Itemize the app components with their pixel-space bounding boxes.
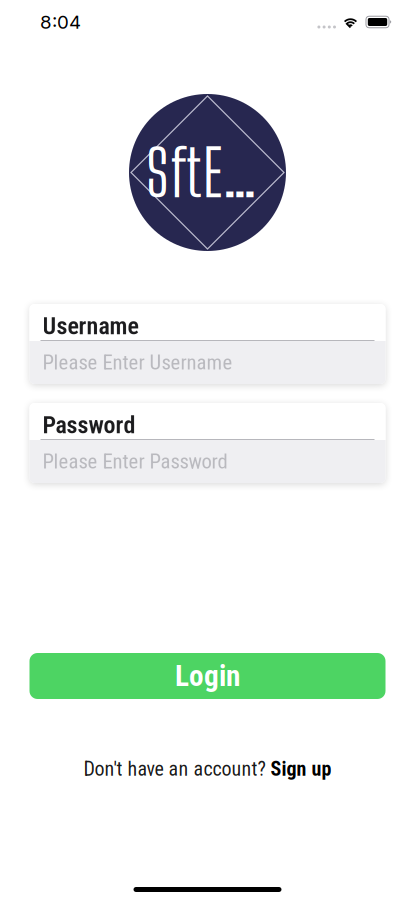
staticText: Sign up [270, 757, 331, 781]
staticText: Login [175, 659, 240, 693]
staticText: Username [42, 312, 138, 340]
staticText: Don't have an account? [83, 757, 270, 781]
staticText: Please Enter Password [42, 449, 227, 474]
staticText: Please Enter Username [42, 350, 232, 375]
staticText: Password [42, 411, 135, 439]
staticText: SftEye [146, 134, 268, 211]
staticText: 8:04 [40, 11, 81, 33]
button[interactable]: Don't have an account? [83, 758, 331, 780]
button[interactable]: Login [29, 653, 385, 699]
button[interactable]: Username [29, 304, 385, 384]
button[interactable]: Password [29, 403, 385, 483]
